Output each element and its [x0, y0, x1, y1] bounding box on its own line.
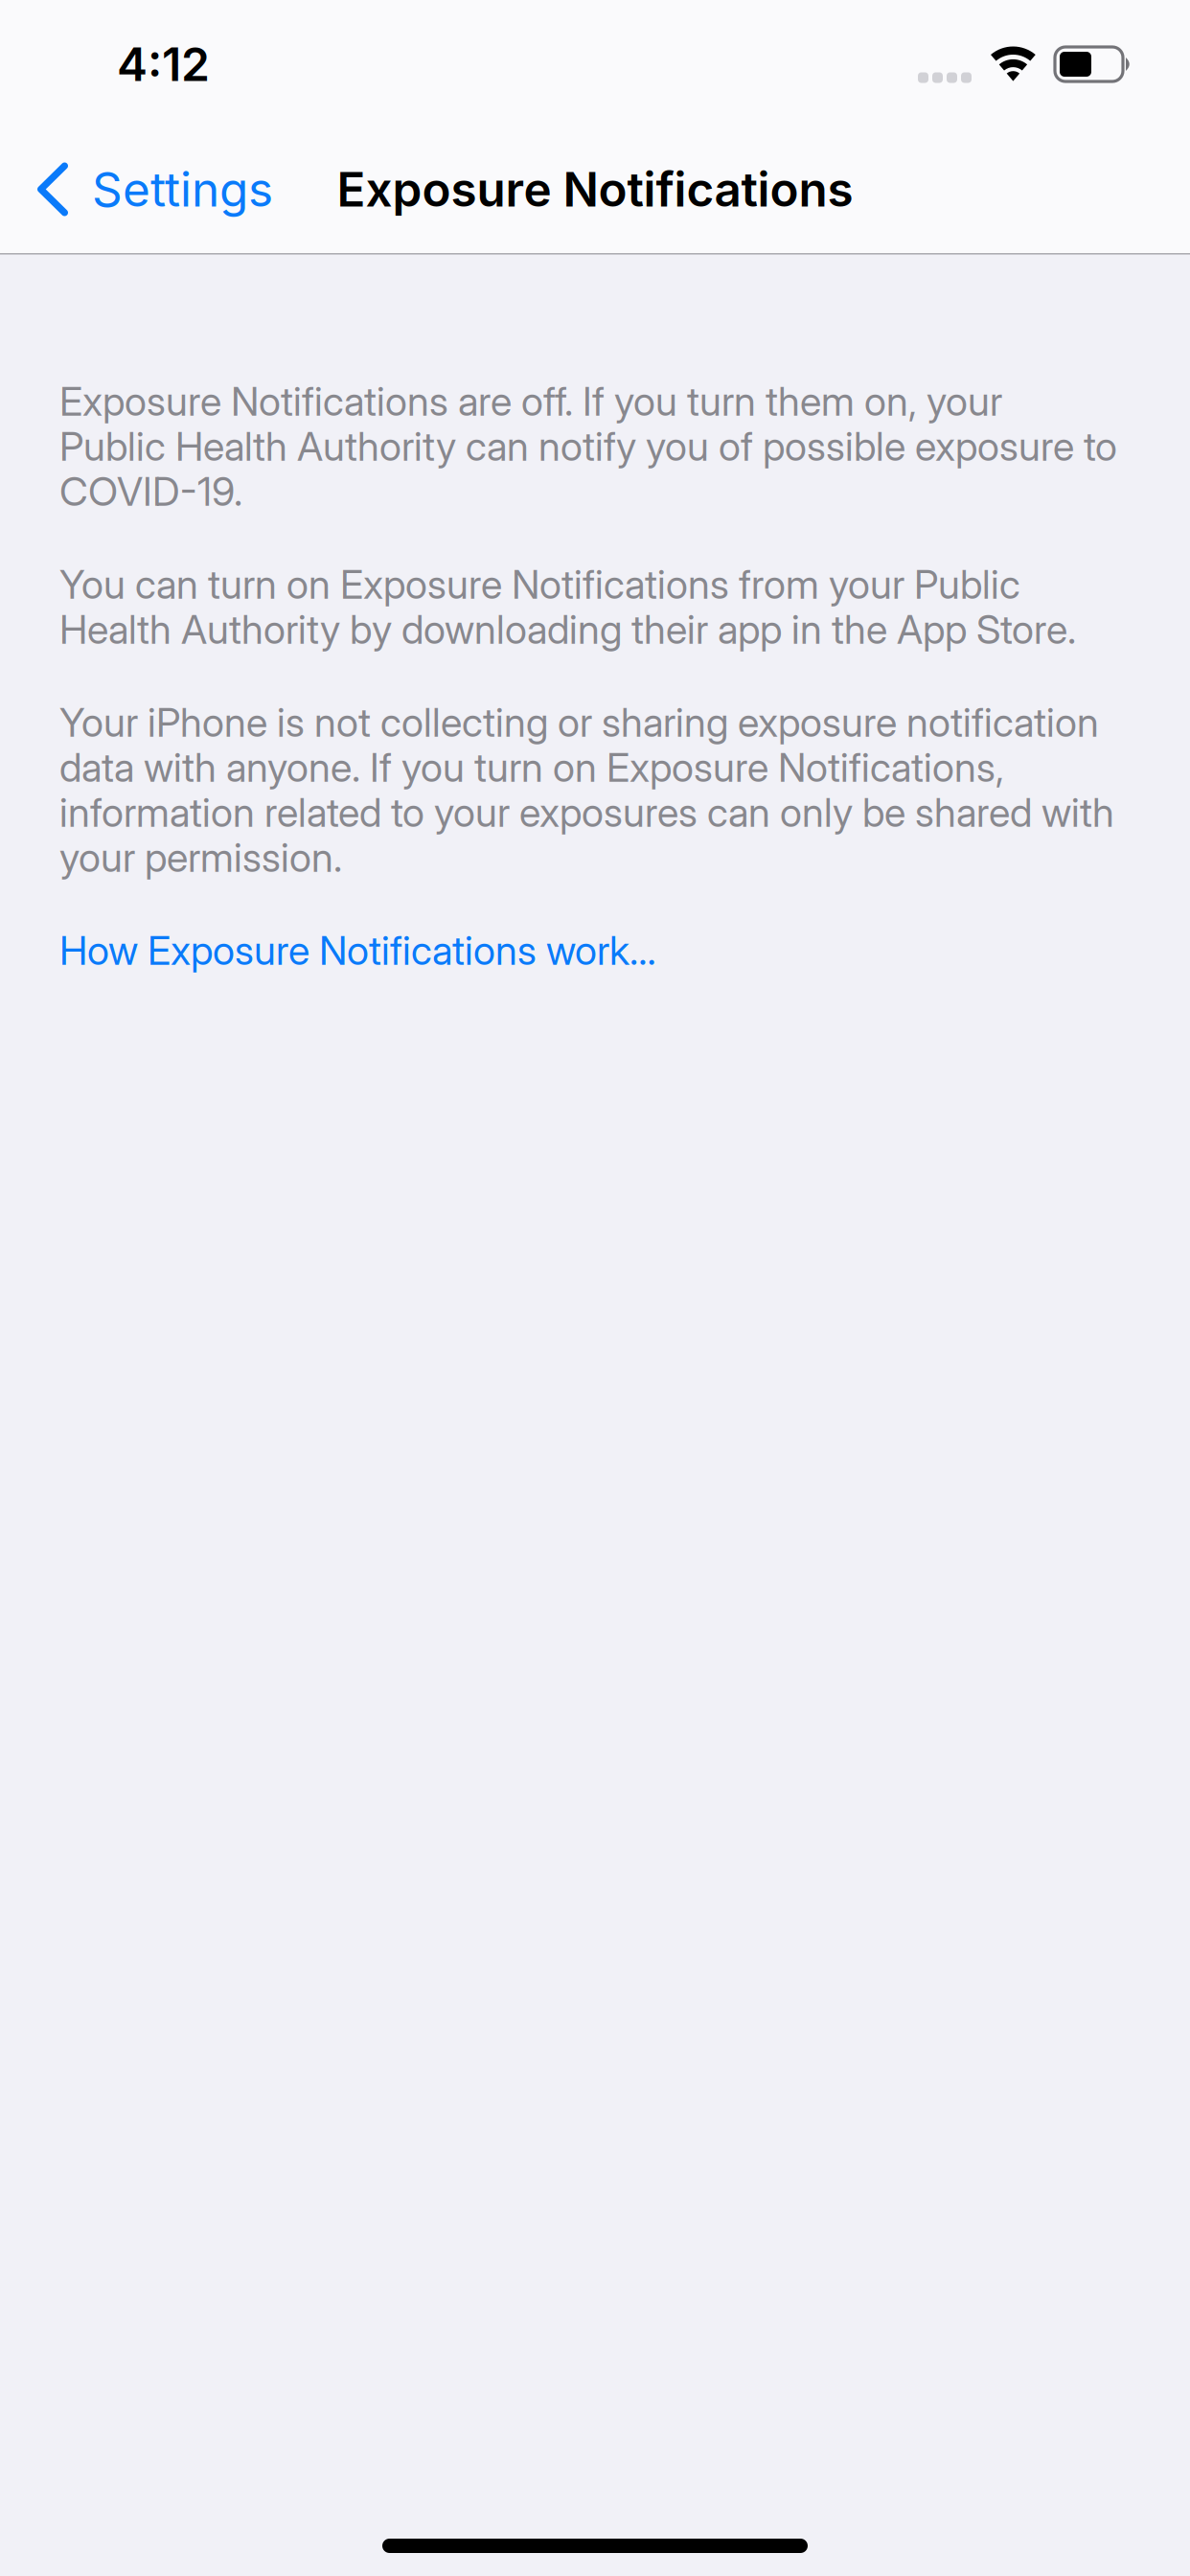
staticText: 4:12	[117, 36, 210, 92]
staticText: Your iPhone is not collecting or sharing…	[59, 698, 1114, 881]
staticText: Settings	[92, 161, 273, 218]
staticText: Exposure Notifications are off. If you t…	[59, 377, 1117, 515]
button[interactable]: How Exposure Notifications work…	[59, 926, 1131, 965]
staticText: How Exposure Notifications work…	[59, 926, 656, 974]
button[interactable]: Back to Settings	[0, 126, 298, 252]
staticText: Exposure Notifications	[337, 161, 853, 218]
staticText: You can turn on Exposure Notifications f…	[59, 560, 1076, 653]
